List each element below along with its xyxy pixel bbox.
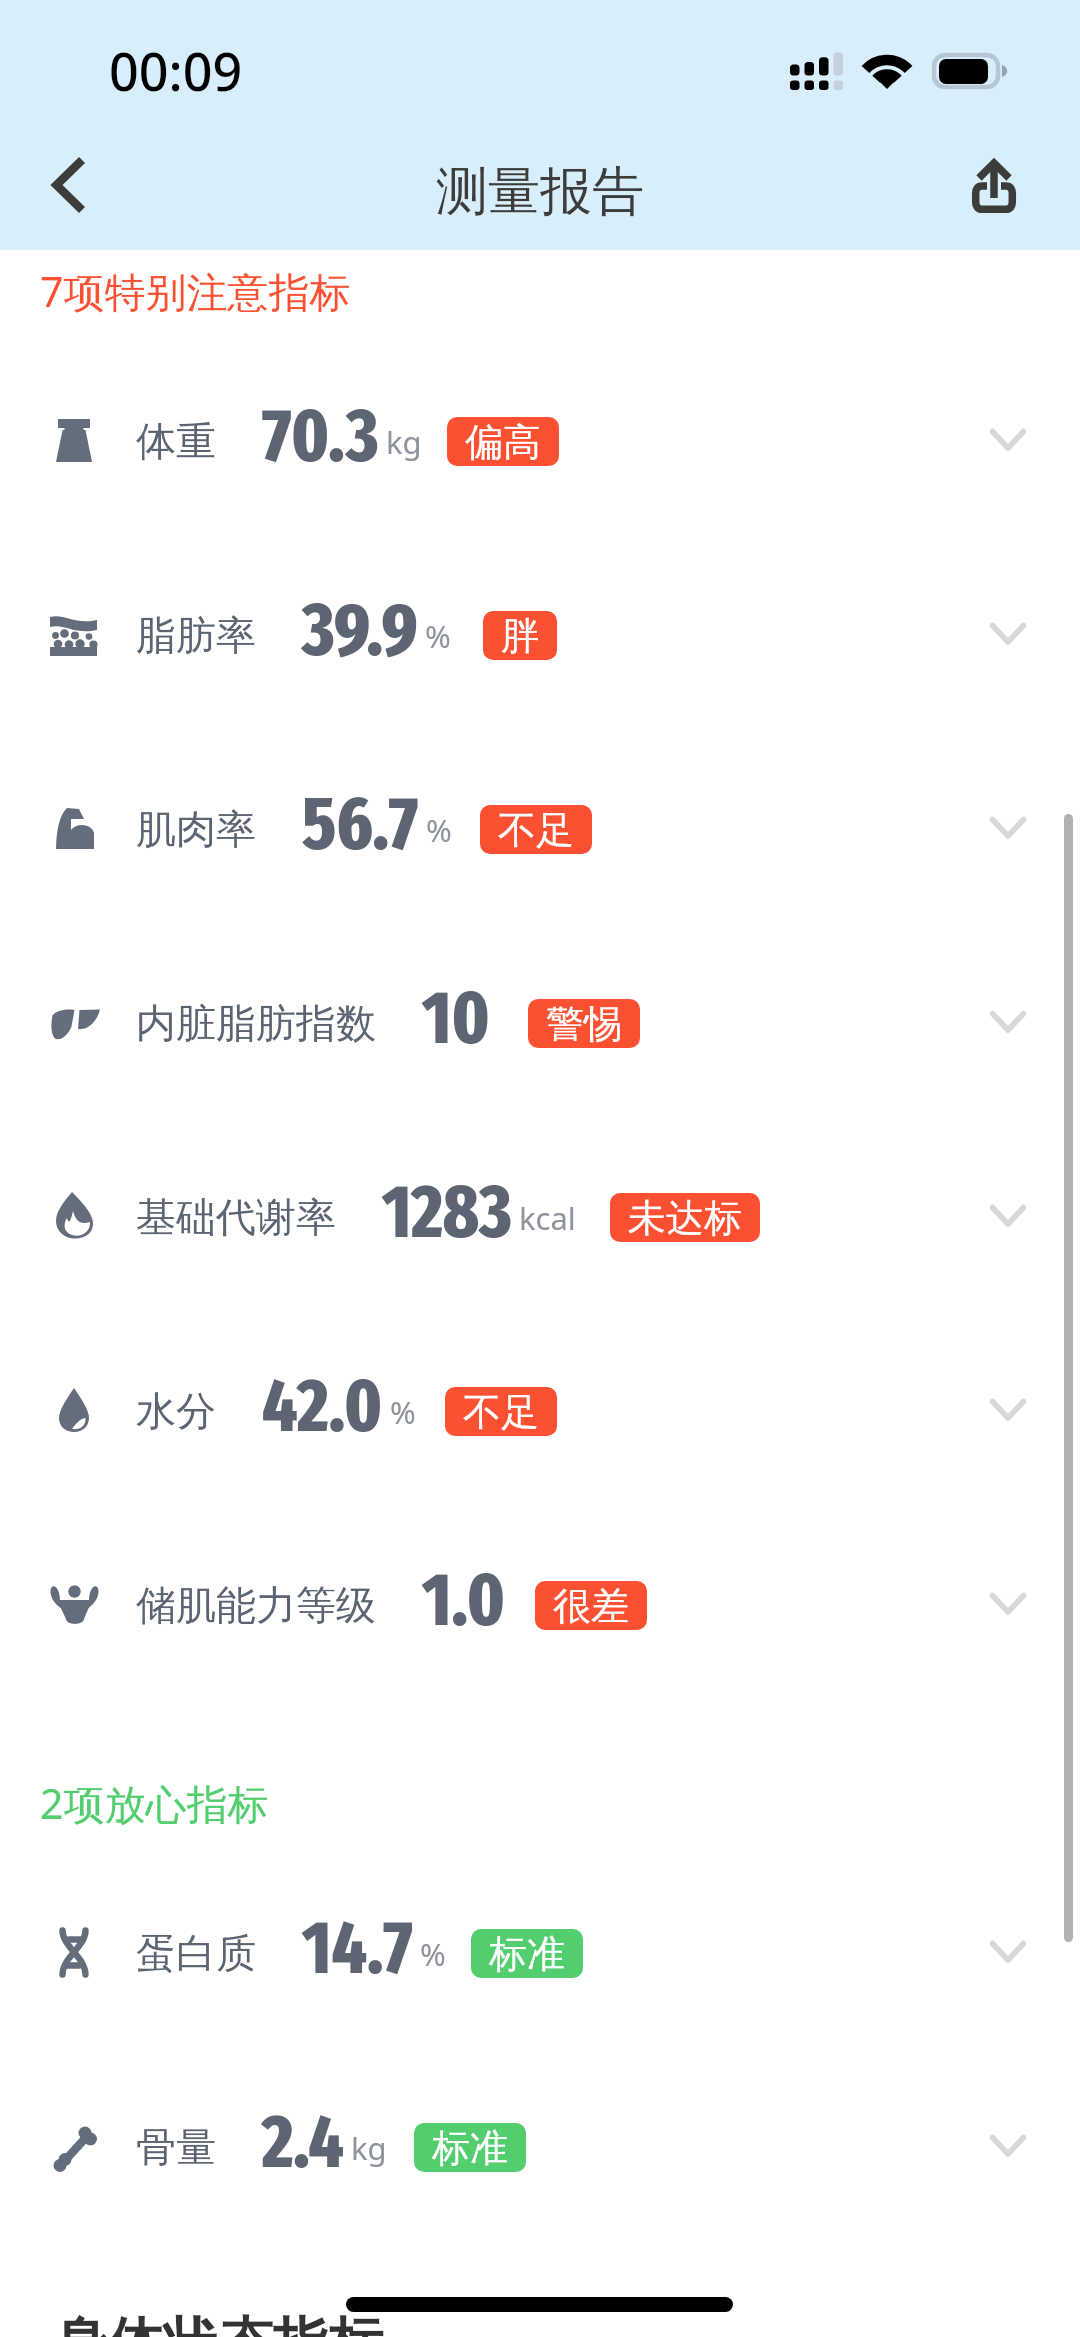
staticText: 10	[422, 974, 490, 1062]
staticText: 56.7	[302, 780, 419, 868]
staticText: 很差	[553, 1582, 629, 1630]
staticText: kcal	[519, 1197, 576, 1239]
staticText: 39.9	[302, 586, 418, 674]
button[interactable]: 肌肉率	[0, 732, 1080, 926]
button[interactable]: Share	[952, 149, 1036, 233]
staticText: %	[390, 1391, 416, 1433]
staticText: 胖	[501, 612, 539, 660]
staticText: 标准	[432, 2124, 508, 2172]
staticText: 00:09	[109, 35, 243, 106]
button[interactable]: 体重	[0, 344, 1080, 538]
staticText: 警惕	[546, 1000, 622, 1048]
staticText: %	[425, 615, 451, 657]
staticText: 骨量	[136, 2122, 216, 2172]
staticText: 体重	[136, 416, 216, 466]
staticText: 偏高	[465, 418, 541, 466]
staticText: 1.0	[422, 1556, 506, 1644]
staticText: 储肌能力等级	[136, 1580, 376, 1630]
staticText: 内脏脂肪指数	[136, 998, 376, 1048]
staticText: %	[426, 809, 452, 851]
staticText: 14.7	[302, 1904, 413, 1992]
button[interactable]: 水分	[0, 1314, 1080, 1508]
button[interactable]: 骨量	[0, 2050, 1080, 2244]
staticText: 2.4	[262, 2098, 344, 2186]
staticText: 水分	[136, 1386, 216, 1436]
button[interactable]: 基础代谢率	[0, 1120, 1080, 1314]
staticText: 标准	[489, 1930, 565, 1978]
button[interactable]: Back	[18, 134, 118, 234]
staticText: 基础代谢率	[136, 1192, 336, 1242]
staticText: 42.0	[262, 1362, 383, 1450]
button[interactable]: 蛋白质	[0, 1856, 1080, 2050]
staticText: 2项放心指标	[40, 1775, 269, 1831]
staticText: kg	[351, 2127, 387, 2169]
staticText: 肌肉率	[136, 804, 256, 854]
staticText: 测量报告	[0, 159, 1080, 225]
button[interactable]: 脂肪率	[0, 538, 1080, 732]
staticText: 未达标	[628, 1194, 742, 1242]
staticText: 不足	[498, 806, 574, 854]
staticText: 身体状态指标	[53, 2309, 383, 2337]
staticText: %	[420, 1933, 446, 1975]
button[interactable]: 内脏脂肪指数	[0, 926, 1080, 1120]
staticText: 70.3	[262, 392, 379, 480]
staticText: 不足	[463, 1388, 539, 1436]
staticText: 脂肪率	[136, 610, 256, 660]
button[interactable]: 储肌能力等级	[0, 1508, 1080, 1702]
staticText: kg	[386, 421, 422, 463]
staticText: 7项特别注意指标	[40, 263, 351, 319]
staticText: 1283	[382, 1168, 512, 1256]
staticText: 蛋白质	[136, 1928, 256, 1978]
